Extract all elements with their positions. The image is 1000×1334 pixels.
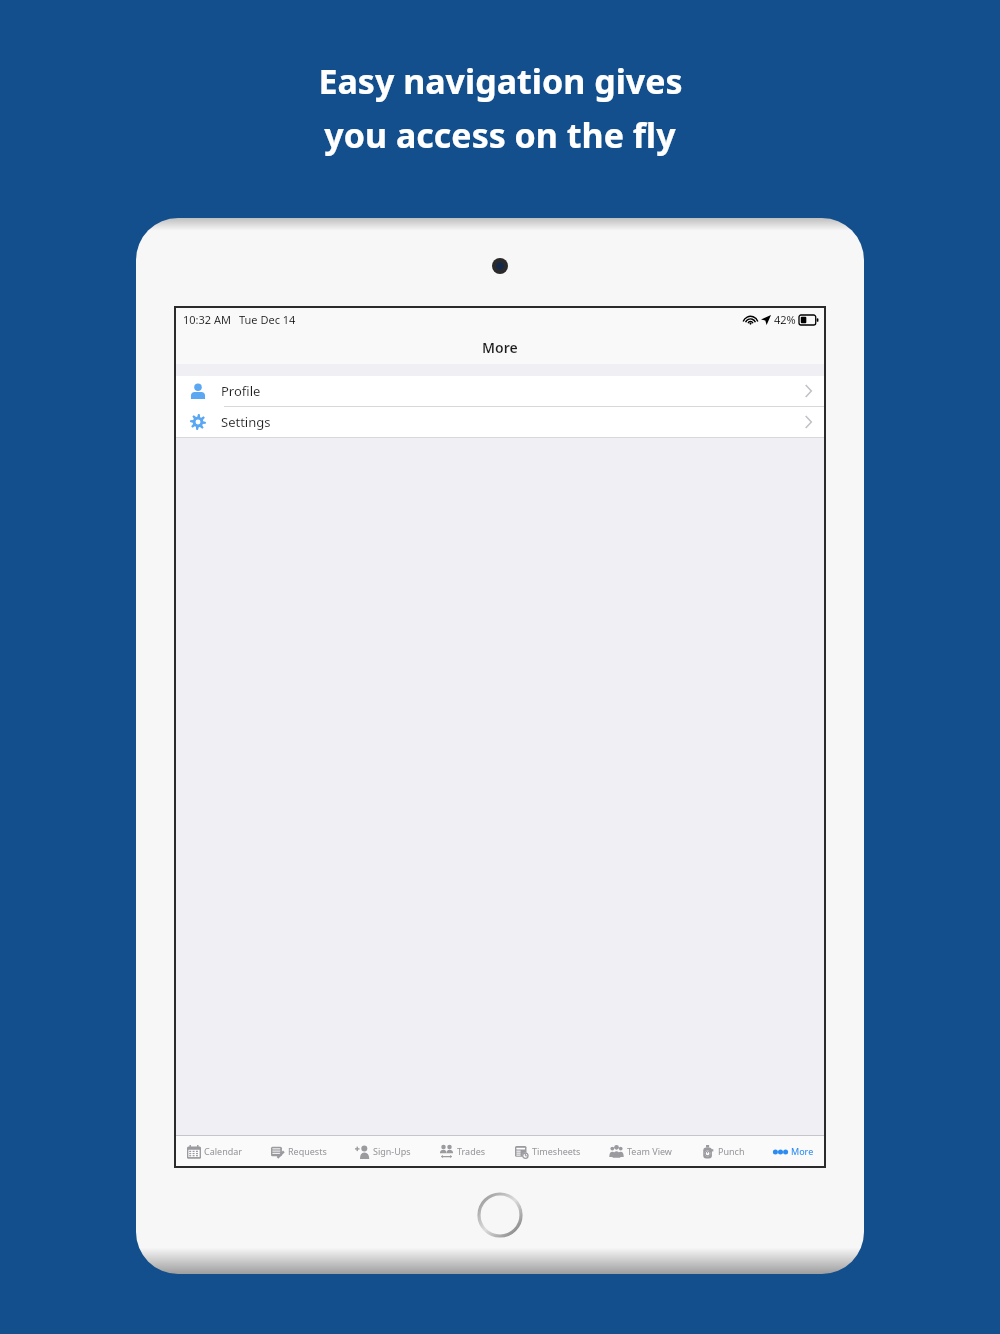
button[interactable]: Punch [698,1137,747,1165]
button[interactable]: Calendar [184,1137,244,1165]
staticText: More [482,338,518,357]
staticText: 10:32 AM [183,312,231,327]
button[interactable]: Requests [268,1137,329,1165]
staticText: Timesheets [532,1145,581,1157]
staticText: Team View [627,1145,672,1157]
staticText: Settings [221,413,271,431]
button[interactable]: Trades [437,1137,488,1165]
staticText: Easy navigation gives [318,58,683,104]
button[interactable]: Team View [607,1137,674,1165]
button[interactable]: Home [477,1192,523,1238]
staticText: 42% [774,312,796,327]
staticText: you access on the fly [324,112,676,158]
button[interactable]: Timesheets [512,1137,583,1165]
staticText: Requests [288,1145,327,1157]
button[interactable]: Settings [176,407,824,437]
button[interactable]: Profile [176,376,824,406]
button[interactable]: Sign-Ups [353,1137,413,1165]
staticText: More [791,1145,814,1157]
staticText: Profile [221,382,261,400]
staticText: Punch [718,1145,745,1157]
staticText: Trades [457,1145,486,1157]
staticText: Sign-Ups [373,1145,411,1157]
staticText: Tue Dec 14 [239,312,296,327]
button[interactable]: More [771,1137,816,1165]
staticText: Calendar [204,1145,242,1157]
